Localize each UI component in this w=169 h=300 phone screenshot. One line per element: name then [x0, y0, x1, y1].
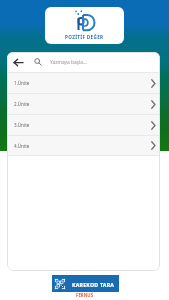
staticText: POZİTİF DEĞER	[65, 34, 104, 40]
button[interactable]: 2.Ünite	[7, 94, 160, 114]
staticText: Yazmaya başla...	[50, 59, 87, 66]
staticText: 3.Ünite	[14, 122, 30, 128]
staticText: 4.Ünite	[14, 143, 30, 149]
button[interactable]: Back	[7, 52, 30, 72]
staticText: 1.Ünite	[14, 80, 30, 86]
button[interactable]: KAREKOD TARA	[52, 275, 119, 292]
button[interactable]: Pozitif Değer logo	[45, 7, 124, 44]
staticText: 2.Ünite	[14, 101, 30, 107]
staticText: KAREKOD TARA	[72, 281, 115, 288]
button[interactable]: 3.Ünite	[7, 115, 160, 135]
staticText: FERNUS	[76, 292, 94, 298]
button[interactable]: 4.Ünite	[7, 136, 160, 155]
button[interactable]: 1.Ünite	[7, 73, 160, 93]
